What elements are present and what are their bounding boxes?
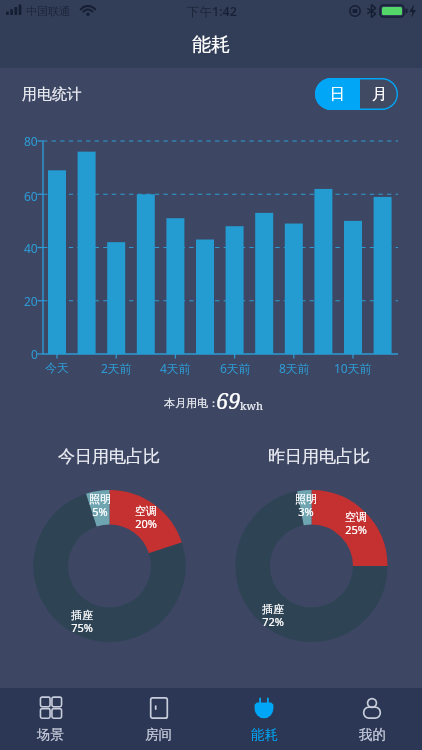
staticText: 80 (24, 133, 38, 149)
staticText: 本月用电： (164, 396, 219, 410)
staticText: 空调 (345, 510, 367, 524)
button[interactable]: 日 (315, 78, 360, 110)
staticText: 月 (372, 85, 387, 104)
staticText: 8天前 (279, 360, 310, 376)
staticText: 空调 (135, 504, 157, 518)
staticText: 房间 (145, 726, 172, 743)
staticText: 能耗 (192, 33, 230, 57)
staticText: 插座 (71, 608, 93, 622)
button[interactable]: 房间 (105, 688, 210, 750)
staticText: 中国联通 (26, 4, 70, 18)
staticText: 插座 (262, 602, 284, 616)
staticText: 20 (24, 293, 38, 309)
staticText: 2天前 (101, 360, 132, 376)
staticText: 69 (216, 385, 241, 415)
staticText: 下午1:42 (187, 3, 237, 20)
staticText: 72% (262, 614, 284, 629)
staticText: 3% (298, 504, 314, 519)
staticText: 10天前 (334, 360, 372, 376)
button[interactable]: 场景 (0, 688, 105, 750)
staticText: 今日用电占比 (58, 446, 160, 467)
staticText: 今天 (45, 360, 69, 375)
staticText: 6天前 (220, 360, 251, 376)
staticText: 我的 (359, 726, 386, 743)
staticText: 20% (135, 516, 157, 531)
staticText: 昨日用电占比 (268, 446, 370, 467)
staticText: 日 (330, 85, 345, 104)
staticText: 5% (92, 504, 108, 519)
staticText: 40 (24, 240, 38, 256)
staticText: 场景 (37, 726, 64, 743)
staticText: 75% (71, 620, 93, 635)
staticText: 0 (31, 346, 38, 362)
staticText: 4天前 (160, 360, 191, 376)
staticText: 照明 (89, 492, 111, 506)
staticText: 60 (24, 188, 38, 204)
staticText: 25% (345, 522, 367, 537)
staticText: 照明 (295, 492, 317, 506)
button[interactable]: 能耗 (210, 688, 316, 750)
staticText: kwh (240, 398, 263, 413)
staticText: 能耗 (251, 726, 278, 743)
button[interactable]: 我的 (316, 688, 422, 750)
button[interactable]: 月 (360, 78, 398, 110)
staticText: 用电统计 (22, 85, 82, 104)
